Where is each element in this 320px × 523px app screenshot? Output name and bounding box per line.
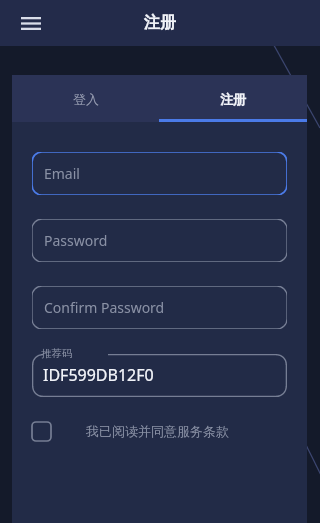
button[interactable]: 注册: [159, 75, 307, 122]
staticText: 登入: [73, 91, 99, 107]
staticText: 注册: [220, 91, 246, 107]
button[interactable]: Password: [32, 219, 287, 262]
button[interactable]: 我已阅读并同意服务条款: [32, 413, 287, 449]
staticText: 推荐码: [41, 347, 73, 360]
staticText: 我已阅读并同意服务条款: [86, 423, 229, 439]
button[interactable]: Email: [32, 152, 287, 195]
button[interactable]: Menu: [13, 5, 49, 41]
staticText: Email: [44, 164, 80, 183]
staticText: Password: [44, 231, 108, 250]
button[interactable]: 登入: [12, 75, 159, 122]
button[interactable]: Confirm Password: [32, 286, 287, 329]
button[interactable]: 推荐码: [32, 347, 287, 397]
staticText: 注册: [144, 13, 176, 33]
staticText: Confirm Password: [44, 298, 165, 317]
staticText: IDF599DB12F0: [43, 364, 154, 386]
